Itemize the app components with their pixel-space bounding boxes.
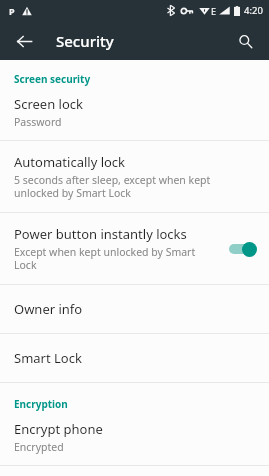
staticText: Smart Lock — [14, 349, 82, 367]
other: Power button instantly locks toggle — [227, 240, 257, 258]
staticText: Automatically lock — [14, 153, 126, 171]
staticText: 5 seconds after sleep, except when kept … — [14, 173, 255, 200]
button[interactable]: Back — [8, 25, 40, 57]
button[interactable]: Screen lock — [0, 88, 269, 140]
staticText: Encrypted — [14, 440, 64, 454]
button[interactable]: Encrypt phone — [0, 413, 269, 465]
staticText: Screen lock — [14, 95, 83, 113]
button[interactable]: Search — [229, 25, 261, 57]
staticText: Owner info — [14, 300, 83, 318]
staticText: 4:20 — [244, 4, 263, 17]
staticText: Security — [56, 31, 114, 51]
staticText: Encryption — [14, 397, 255, 411]
staticText: Screen security — [14, 72, 255, 86]
button[interactable]: Automatically lock — [0, 141, 269, 212]
button[interactable]: Smart Lock — [0, 334, 269, 382]
button[interactable]: Power button instantly locks — [0, 213, 269, 284]
button[interactable]: Owner info — [0, 285, 269, 333]
staticText: Password — [14, 115, 62, 129]
staticText: Except when kept unlocked by Smart Lock — [14, 245, 219, 272]
staticText: P — [9, 5, 15, 17]
staticText: Encrypt phone — [14, 420, 103, 438]
staticText: Power button instantly locks — [14, 225, 187, 243]
staticText: E — [211, 5, 217, 17]
